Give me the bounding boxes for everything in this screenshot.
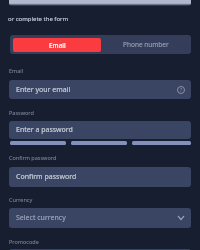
staticText: Confirm password: [9, 154, 57, 161]
staticText: Select currency: [16, 213, 66, 223]
button[interactable]: Enter your email: [9, 80, 191, 99]
staticText: Email: [49, 41, 66, 50]
staticText: Password: [9, 109, 34, 116]
staticText: Enter a password: [16, 125, 73, 135]
button[interactable]: Select currency: [9, 208, 191, 228]
button[interactable]: Enter a password: [9, 121, 191, 139]
staticText: Enter your email: [16, 85, 71, 95]
staticText: Promocode: [9, 238, 39, 245]
button[interactable]: Phone number: [100, 35, 191, 54]
button[interactable]: Confirm password: [9, 167, 191, 187]
staticText: Phone number: [123, 40, 169, 49]
staticText: ?: [180, 87, 183, 94]
staticText: Confirm password: [16, 172, 77, 182]
button[interactable]: [9, 0, 191, 6]
staticText: Currency: [9, 196, 33, 203]
staticText: or complete the form: [8, 15, 69, 23]
staticText: Email: [9, 67, 24, 74]
button[interactable]: Email: [13, 38, 101, 52]
